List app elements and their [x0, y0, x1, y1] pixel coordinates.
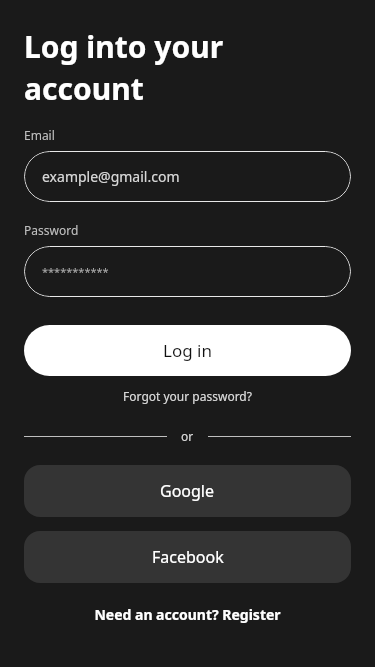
staticText: Google [160, 480, 215, 502]
staticText: *********** [42, 264, 109, 279]
staticText: example@gmail.com [42, 167, 180, 186]
button[interactable]: Log in [24, 325, 351, 376]
staticText: Email [24, 127, 55, 143]
button[interactable]: example@gmail.com [24, 151, 351, 202]
staticText: Password [24, 222, 79, 238]
button[interactable]: Sign in with Google [24, 465, 351, 517]
staticText: or [181, 428, 194, 444]
staticText: Log in [163, 339, 212, 362]
staticText: Need an account? Register [94, 605, 281, 624]
staticText: Forgot your password? [123, 388, 252, 404]
staticText: Facebook [152, 546, 224, 568]
button[interactable]: Sign in with Facebook [24, 531, 351, 583]
button[interactable]: *********** [24, 246, 351, 297]
staticText: Log into your account [24, 26, 224, 109]
button[interactable]: Need an account? Register [24, 601, 351, 628]
button[interactable]: Forgot your password? [24, 384, 351, 408]
